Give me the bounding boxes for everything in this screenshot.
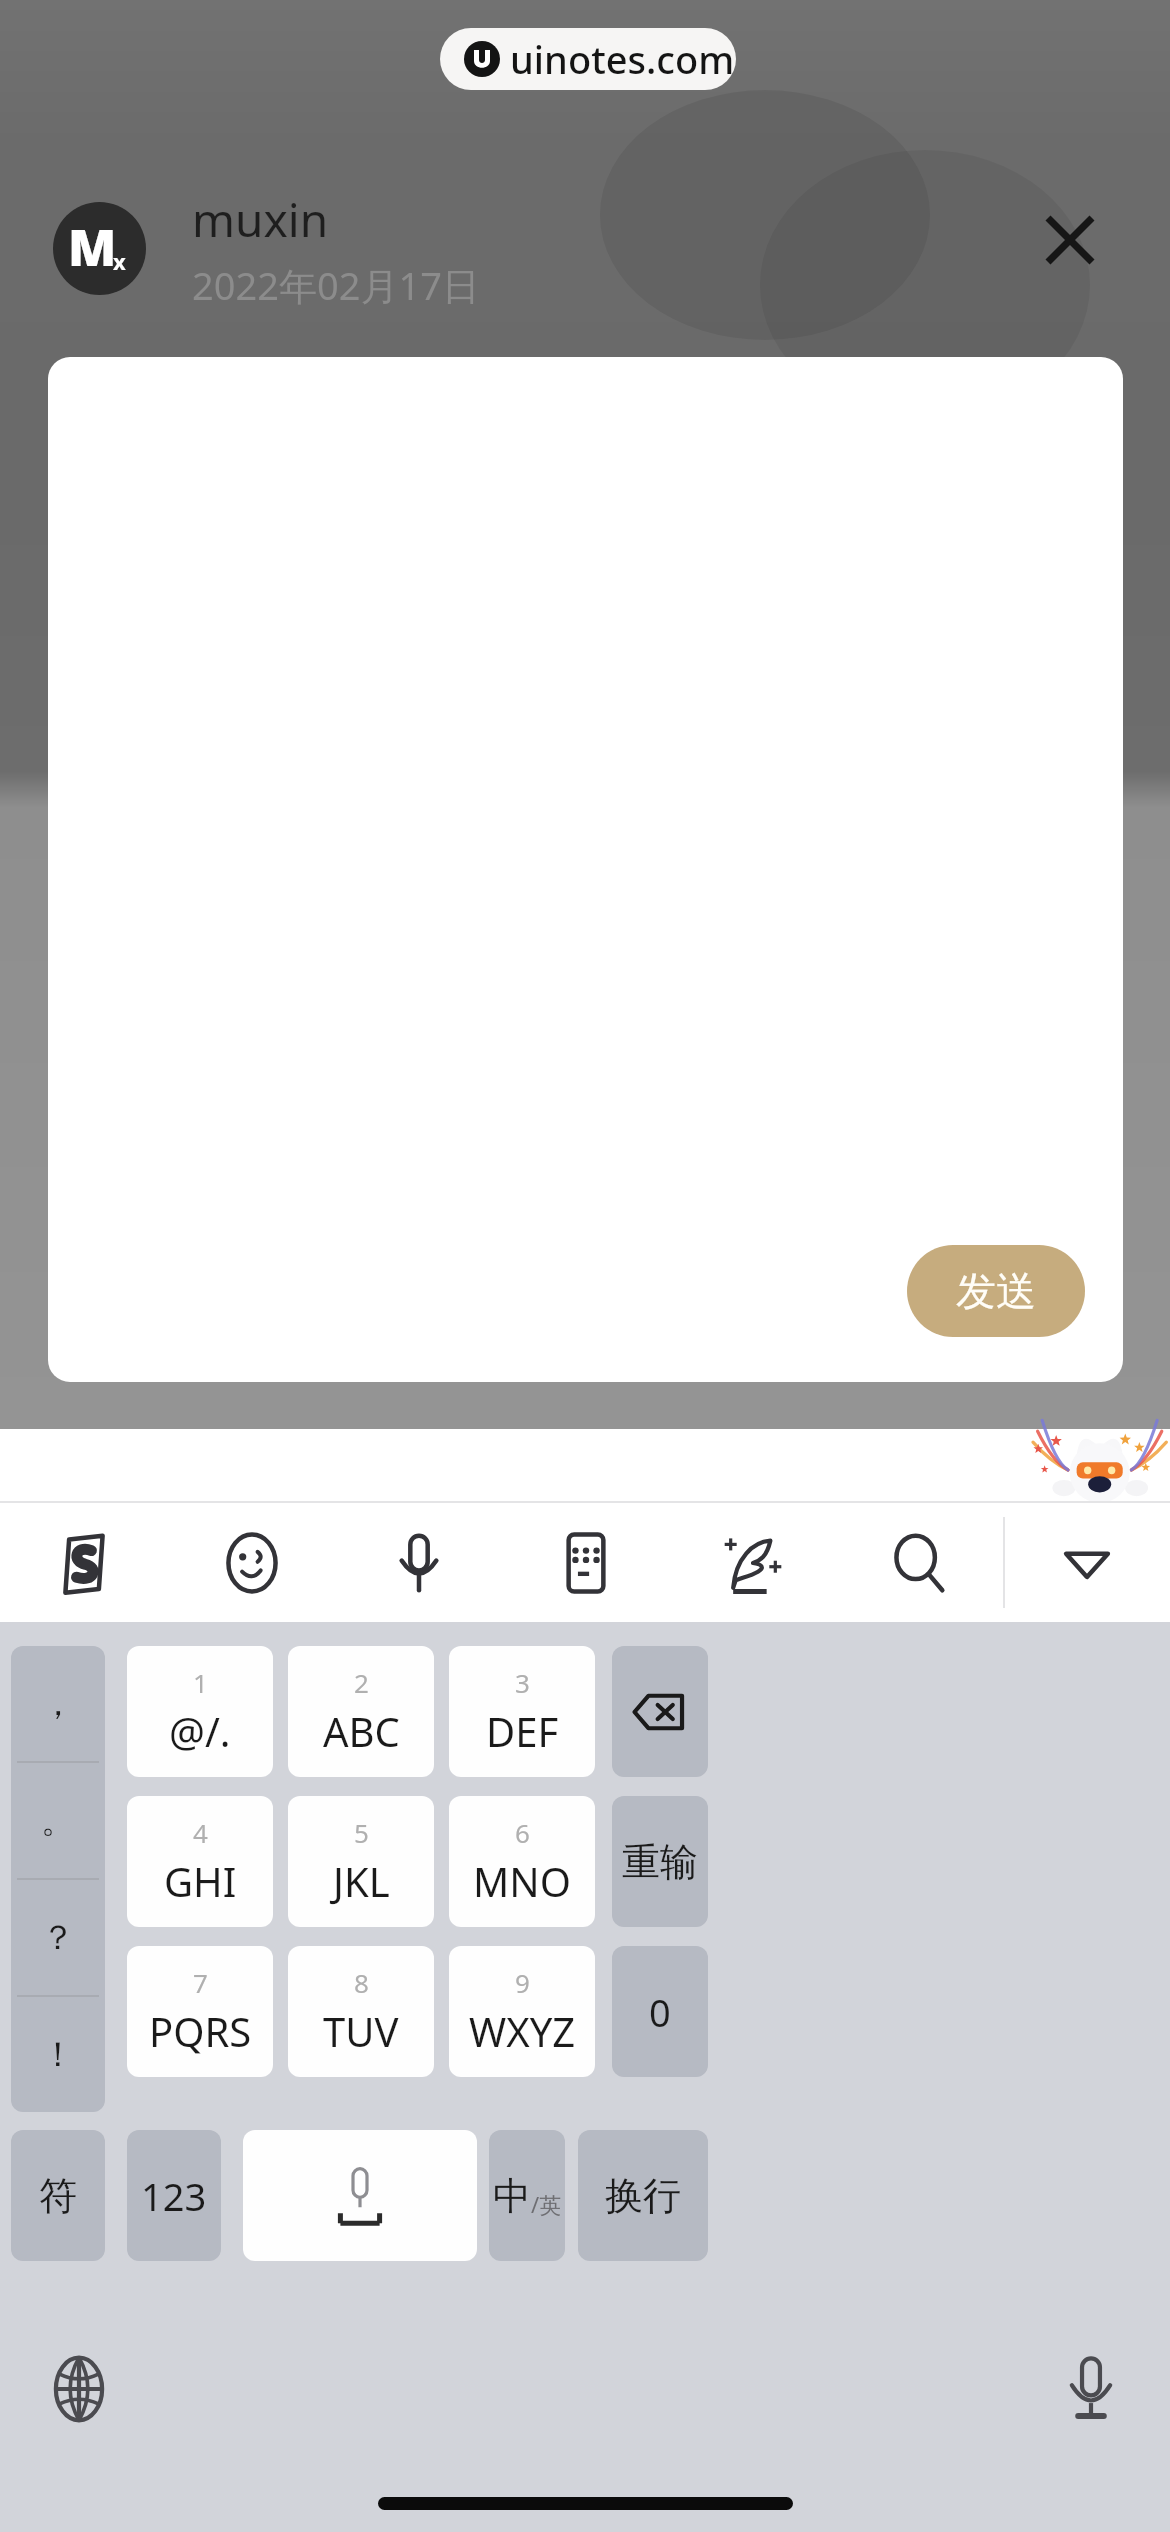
button[interactable]: 7: [127, 1946, 273, 2077]
button[interactable]: 1: [127, 1646, 273, 1777]
staticText: 6: [515, 1815, 530, 1850]
staticText: 重输: [622, 1838, 698, 1886]
staticText: TUV: [323, 2004, 399, 2058]
button[interactable]: Keyboard: [502, 1503, 669, 1622]
button[interactable]: 6: [449, 1796, 595, 1927]
staticText: 4: [193, 1815, 208, 1850]
staticText: 8: [354, 1965, 369, 2000]
button[interactable]: 9: [449, 1946, 595, 2077]
staticText: 1: [193, 1665, 208, 1700]
button[interactable]: Voice: [335, 1503, 502, 1622]
staticText: 。: [41, 1799, 75, 1842]
staticText: 9: [515, 1965, 530, 2000]
staticText: 2022年02月17日: [192, 259, 480, 311]
button[interactable]: 8: [288, 1946, 434, 2077]
staticText: ABC: [323, 1704, 400, 1758]
staticText: 5: [354, 1815, 369, 1850]
button[interactable]: Sogou: [0, 1503, 168, 1622]
button[interactable]: 4: [127, 1796, 273, 1927]
staticText: GHI: [164, 1854, 237, 1908]
button[interactable]: uinotes.com: [440, 28, 736, 90]
staticText: 2: [354, 1665, 369, 1700]
button[interactable]: ，: [11, 1646, 105, 2112]
button[interactable]: Emoji: [168, 1503, 335, 1622]
button[interactable]: 发送: [48, 357, 1123, 1382]
button[interactable]: 中: [489, 2130, 565, 2261]
staticText: 0: [649, 1986, 671, 2038]
staticText: x: [113, 246, 126, 276]
staticText: MNO: [473, 1854, 571, 1908]
staticText: 符: [39, 2172, 77, 2220]
button[interactable]: 5: [288, 1796, 434, 1927]
staticText: ！: [41, 2033, 75, 2076]
staticText: 换行: [605, 2172, 681, 2220]
staticText: 7: [193, 1965, 208, 2000]
staticText: M: [68, 213, 117, 281]
button[interactable]: Dictation: [1048, 2346, 1134, 2432]
button[interactable]: Handwriting: [669, 1503, 836, 1622]
button[interactable]: Close: [1022, 192, 1118, 288]
staticText: WXYZ: [469, 2004, 576, 2058]
staticText: DEF: [486, 1704, 559, 1758]
button[interactable]: 0: [612, 1946, 708, 2077]
staticText: ，: [41, 1682, 75, 1725]
button[interactable]: 3: [449, 1646, 595, 1777]
staticText: 3: [515, 1665, 530, 1700]
staticText: muxin: [192, 188, 329, 251]
staticText: /英: [531, 2189, 562, 2219]
button[interactable]: 符: [11, 2130, 105, 2261]
button[interactable]: 2: [288, 1646, 434, 1777]
button[interactable]: 换行: [578, 2130, 708, 2261]
button[interactable]: Space: [243, 2130, 477, 2261]
staticText: 中: [493, 2172, 531, 2220]
button[interactable]: Sticker: [1028, 1433, 1156, 1499]
staticText: JKL: [333, 1854, 390, 1908]
button[interactable]: Search: [836, 1503, 1003, 1622]
button[interactable]: 123: [127, 2130, 221, 2261]
staticText: 发送: [956, 1266, 1036, 1316]
button[interactable]: Avatar: [53, 202, 146, 295]
staticText: uinotes.com: [510, 33, 735, 85]
button[interactable]: Hide keyboard: [1003, 1503, 1170, 1622]
button[interactable]: 发送: [907, 1245, 1085, 1337]
button[interactable]: 重输: [612, 1796, 708, 1927]
button[interactable]: Change language: [36, 2346, 122, 2432]
staticText: ？: [41, 1916, 75, 1959]
staticText: 123: [141, 2170, 207, 2222]
staticText: @/.: [169, 1704, 231, 1758]
staticText: PQRS: [149, 2004, 252, 2058]
button[interactable]: Backspace: [612, 1646, 708, 1777]
